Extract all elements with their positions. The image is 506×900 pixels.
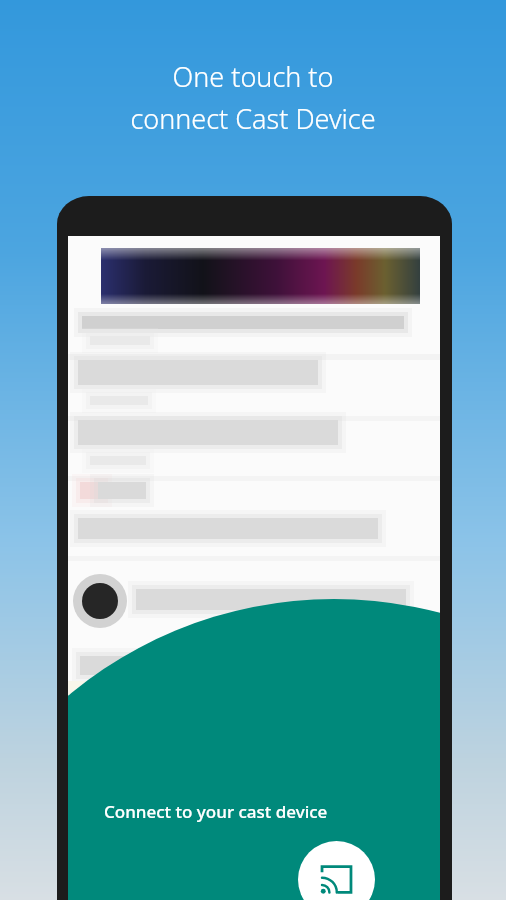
button[interactable]: Connect to cast device <box>298 841 375 900</box>
staticText: Connect to your cast device <box>104 800 328 823</box>
staticText: One touch to connect Cast Device <box>0 58 506 900</box>
